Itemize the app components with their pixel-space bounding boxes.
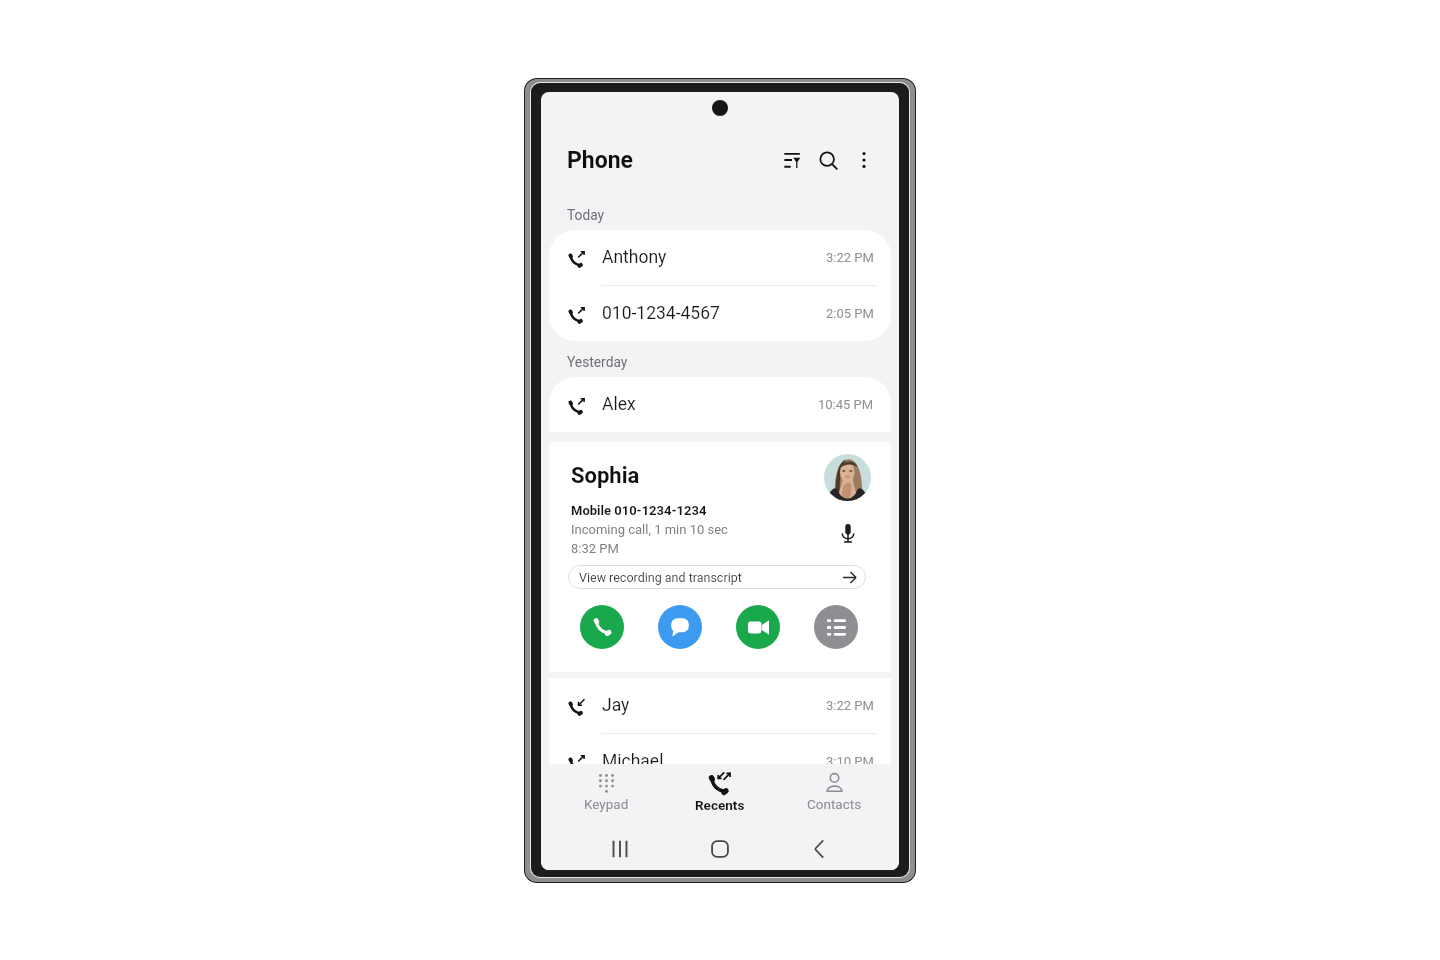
button[interactable]: Video call	[736, 605, 780, 649]
button[interactable]: Call recording	[833, 518, 863, 548]
staticText: Sophia	[571, 463, 640, 489]
staticText: View recording and transcript	[579, 570, 742, 585]
staticText: Alex	[602, 394, 818, 415]
button[interactable]: Back	[799, 828, 841, 870]
staticText: 010-1234-4567	[602, 303, 826, 324]
staticText: Phone	[567, 147, 776, 174]
staticText: Contacts	[807, 796, 862, 812]
staticText: 10:45 PM	[818, 397, 874, 412]
button[interactable]: 010-1234-4567	[549, 286, 891, 341]
button[interactable]: View recording and transcript	[568, 565, 866, 589]
staticText: 3:22 PM	[826, 698, 874, 713]
button[interactable]: Michael	[549, 734, 891, 789]
button[interactable]: Message	[658, 605, 702, 649]
staticText: 8:32 PM	[571, 541, 619, 556]
button[interactable]: Contacts	[777, 768, 891, 817]
staticText: 3:22 PM	[826, 250, 874, 265]
button[interactable]: Keypad	[549, 768, 663, 817]
button[interactable]: Alex	[549, 377, 891, 432]
button[interactable]: Home	[699, 828, 741, 870]
staticText: Incoming call, 1 min 10 sec	[571, 522, 728, 537]
button[interactable]: Jay	[549, 678, 891, 733]
button[interactable]: More options	[851, 147, 877, 173]
button[interactable]: Recent apps	[599, 828, 641, 870]
button[interactable]: Call details	[814, 605, 858, 649]
staticText: Yesterday	[567, 354, 628, 370]
staticText: Anthony	[602, 247, 826, 268]
staticText: Keypad	[584, 796, 629, 812]
staticText: Michael	[602, 751, 826, 772]
button[interactable]: Sort	[776, 144, 808, 176]
staticText: Jay	[602, 695, 826, 716]
staticText: 3:10 PM	[826, 754, 874, 769]
button[interactable]: Anthony	[549, 230, 891, 285]
button[interactable]: Recents	[663, 767, 777, 818]
staticText: Mobile 010-1234-1234	[571, 503, 707, 518]
staticText: Today	[567, 207, 605, 223]
button[interactable]: Call	[580, 605, 624, 649]
button[interactable]: Search	[812, 144, 844, 176]
staticText: Recents	[695, 797, 745, 813]
staticText: 2:05 PM	[826, 306, 874, 321]
